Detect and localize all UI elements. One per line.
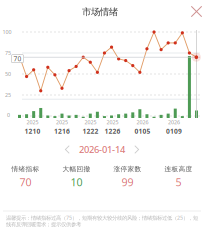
staticText: 70 bbox=[13, 54, 21, 63]
staticText: 2026 bbox=[168, 118, 180, 126]
staticText: 0109 bbox=[166, 127, 182, 135]
staticText: 70 bbox=[19, 175, 31, 189]
staticText: 2025 bbox=[26, 118, 38, 126]
staticText: 温馨提示：情绪指标过高（75），短期有较大较分歧的风险；情绪指标过低（25），短… bbox=[6, 214, 198, 228]
staticText: 2026 bbox=[136, 118, 148, 126]
staticText: 市场情绪 bbox=[82, 6, 118, 18]
staticText: 50 bbox=[5, 70, 11, 78]
staticText: 25 bbox=[5, 91, 11, 99]
staticText: 连板高度 bbox=[164, 165, 192, 173]
staticText: 2026-01-14 bbox=[79, 143, 125, 156]
staticText: 2025 bbox=[106, 118, 118, 126]
staticText: 5 bbox=[175, 175, 181, 189]
staticText: 2025 bbox=[84, 118, 96, 126]
button[interactable]: 涨停家数 bbox=[102, 165, 153, 189]
staticText: 10 bbox=[70, 175, 82, 189]
staticText: 2025 bbox=[56, 118, 68, 126]
button[interactable]: 关闭 bbox=[185, 0, 204, 22]
staticText: 100 bbox=[2, 28, 11, 36]
button[interactable]: 连板高度 bbox=[153, 165, 204, 189]
staticText: 大幅回撤 bbox=[62, 165, 90, 173]
staticText: 涨停家数 bbox=[113, 165, 141, 173]
staticText: 情绪指标 bbox=[11, 165, 39, 173]
staticText: 1226 bbox=[104, 127, 120, 135]
button[interactable]: 前一天 bbox=[63, 143, 72, 155]
button[interactable]: 情绪指标 bbox=[0, 165, 51, 189]
staticText: 1222 bbox=[82, 127, 98, 135]
staticText: 75 bbox=[5, 49, 11, 57]
staticText: 0 bbox=[7, 111, 10, 119]
staticText: 99 bbox=[121, 175, 133, 189]
staticText: 1216 bbox=[54, 127, 70, 135]
button[interactable]: 大幅回撤 bbox=[51, 165, 102, 189]
staticText: 0105 bbox=[134, 127, 150, 135]
staticText: 1210 bbox=[24, 127, 40, 135]
button[interactable]: 后一天 bbox=[132, 143, 141, 155]
